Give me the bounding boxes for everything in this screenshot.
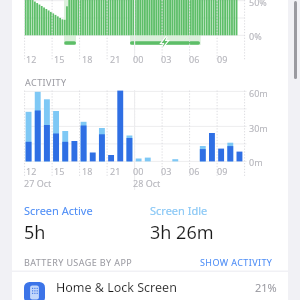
staticText: 00: [133, 53, 144, 65]
staticText: 18: [82, 53, 93, 65]
staticText: 18: [82, 165, 93, 177]
staticText: 00: [133, 165, 144, 177]
staticText: ACTIVITY: [25, 76, 67, 88]
staticText: 15: [54, 165, 65, 177]
staticText: Screen Active: [24, 203, 93, 218]
staticText: 3h 26m: [150, 220, 214, 245]
staticText: 0m: [249, 156, 263, 168]
staticText: 30m: [249, 122, 268, 134]
staticText: 09: [217, 53, 228, 65]
staticText: 21: [110, 53, 121, 65]
staticText: 50%: [249, 0, 267, 8]
staticText: 60m: [249, 87, 268, 99]
staticText: 06: [189, 165, 200, 177]
staticText: 09: [217, 165, 228, 177]
staticText: 06: [189, 53, 200, 65]
staticText: 12: [26, 165, 37, 177]
button[interactable]: SHOW ACTIVITY: [198, 254, 275, 270]
staticText: 21: [110, 165, 121, 177]
staticText: 03: [161, 53, 172, 65]
staticText: 27 Oct: [24, 177, 52, 189]
staticText: SHOW ACTIVITY: [200, 256, 273, 268]
staticText: 28 Oct: [133, 177, 161, 189]
staticText: 03: [161, 165, 172, 177]
staticText: 0%: [249, 30, 262, 42]
staticText: 5h: [24, 220, 46, 245]
button[interactable]: Home & Lock Screen: [0, 274, 300, 300]
staticText: Home & Lock Screen: [56, 279, 177, 296]
staticText: 21%: [255, 280, 277, 295]
staticText: 12: [26, 53, 37, 65]
staticText: Screen Idle: [150, 203, 208, 218]
staticText: 15: [54, 53, 65, 65]
staticText: BATTERY USAGE BY APP: [24, 256, 133, 268]
